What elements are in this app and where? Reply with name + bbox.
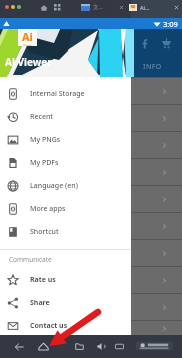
button[interactable]: Home [39, 3, 48, 12]
staticText: INFO [143, 62, 162, 72]
staticText: Viewer [23, 44, 33, 46]
other: Close tab [174, 5, 179, 10]
button[interactable]: Volume [92, 335, 110, 358]
button[interactable]: Back [9, 335, 28, 358]
button[interactable]: Shortcut [0, 220, 131, 243]
button[interactable] [0, 78, 182, 104]
staticText: Share [30, 298, 50, 308]
button[interactable] [0, 132, 182, 158]
staticText: More apps [30, 204, 66, 214]
staticText: 3:09 [163, 19, 178, 29]
staticText: Rate us [30, 275, 56, 285]
button[interactable]: Home [33, 335, 53, 358]
staticText: My PDFs [30, 158, 59, 168]
staticText: Contact us [30, 321, 68, 331]
button[interactable] [0, 159, 182, 185]
button[interactable]: Recent [0, 105, 131, 128]
button[interactable]: Store [157, 34, 175, 52]
button[interactable]: 文... [81, 0, 126, 14]
button[interactable]: Ai... [126, 0, 182, 14]
button[interactable]: Apps [53, 3, 61, 11]
button[interactable]: More apps [0, 197, 131, 220]
button[interactable] [131, 0, 182, 18]
staticText: Ai... [140, 4, 150, 11]
staticText: Communicate [9, 255, 52, 264]
button[interactable] [0, 267, 182, 293]
button[interactable]: Rate us [0, 268, 131, 291]
button[interactable]: Facebook [136, 34, 154, 52]
button[interactable] [0, 105, 182, 131]
button[interactable]: Recent apps [69, 335, 89, 358]
staticText: My PNGs [30, 135, 61, 145]
button[interactable]: INFO [132, 57, 172, 77]
staticText: Shortcut [30, 227, 59, 237]
button[interactable] [0, 240, 182, 266]
staticText: 文... [93, 3, 103, 11]
button[interactable]: My PNGs [0, 128, 131, 151]
button[interactable] [0, 186, 182, 212]
button[interactable]: Contact us [0, 314, 131, 337]
staticText: Ai Viewer [5, 55, 52, 69]
button[interactable]: Internal Storage [0, 82, 131, 105]
staticText: Internal Storage [30, 89, 85, 99]
button[interactable] [0, 294, 182, 320]
staticText: Language (en) [30, 181, 78, 191]
button[interactable]: My PDFs [0, 151, 131, 174]
staticText: Recent [30, 112, 53, 122]
staticText: Ai [22, 29, 33, 44]
button[interactable] [0, 321, 182, 335]
other: Close tab [119, 5, 124, 10]
button[interactable] [0, 213, 182, 239]
button[interactable]: Language (en) [0, 174, 131, 197]
button[interactable]: Screenshot [110, 335, 128, 358]
button[interactable]: Share [0, 291, 131, 314]
